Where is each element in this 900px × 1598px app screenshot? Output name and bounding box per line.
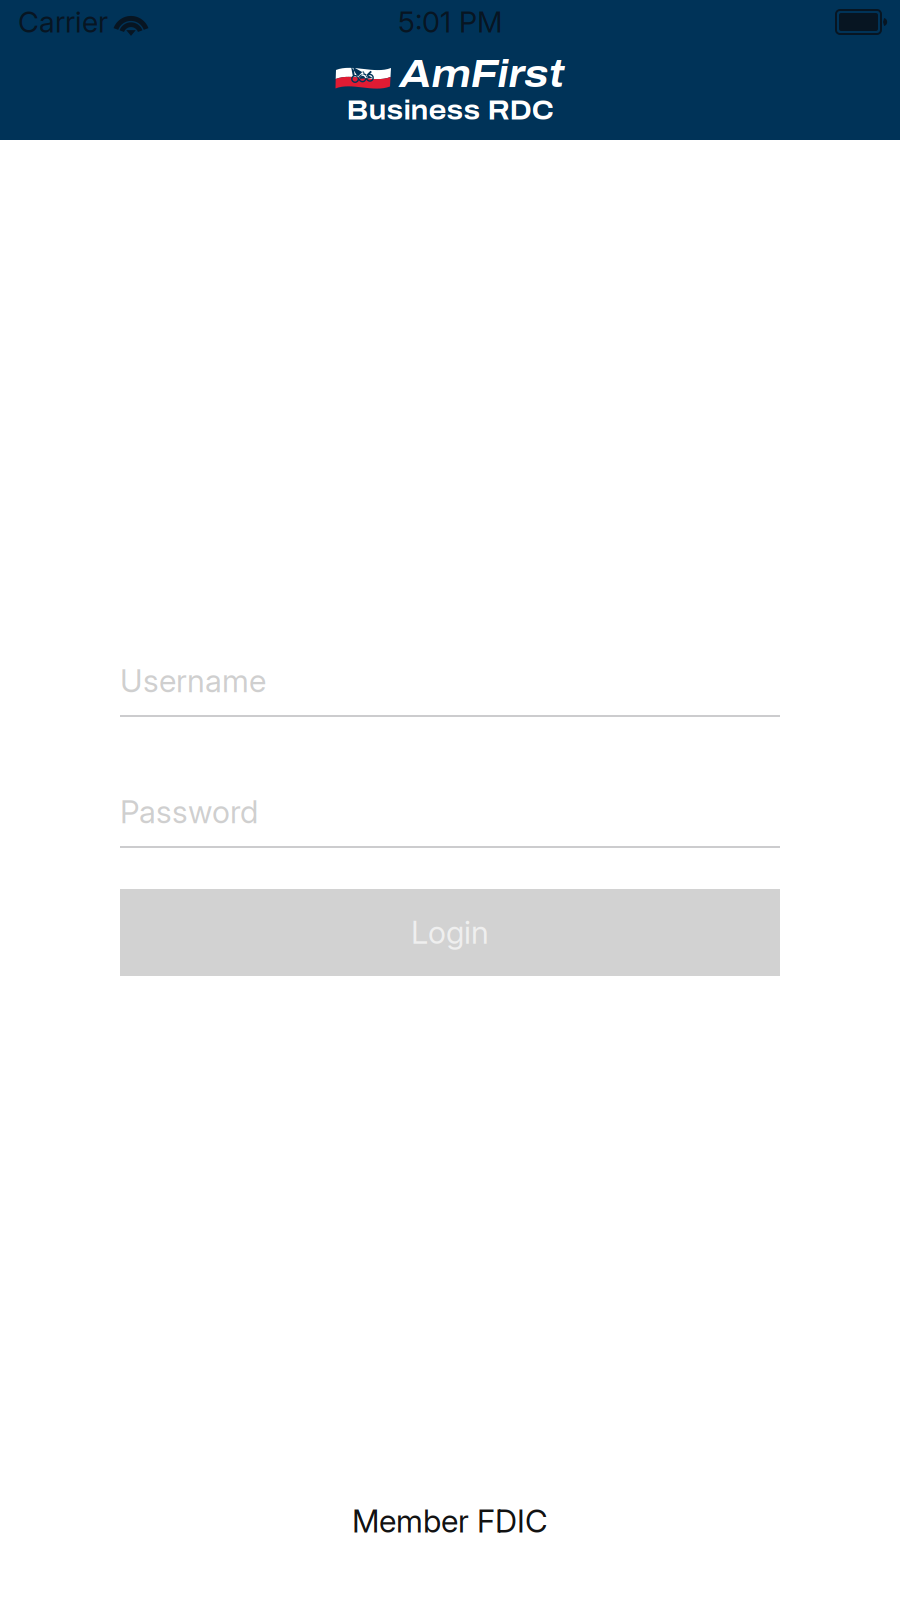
staticText: Member FDIC [352,1502,548,1540]
staticText: Password [120,793,258,831]
staticText: AmFirst [399,53,564,95]
staticText: Business RDC [346,96,553,125]
staticText: 5:01 PM [398,5,502,39]
button[interactable]: Password [120,793,780,848]
staticText: Username [120,662,266,700]
button[interactable]: Username [120,662,780,717]
staticText: Login [411,914,489,951]
staticText: Carrier [18,5,108,39]
